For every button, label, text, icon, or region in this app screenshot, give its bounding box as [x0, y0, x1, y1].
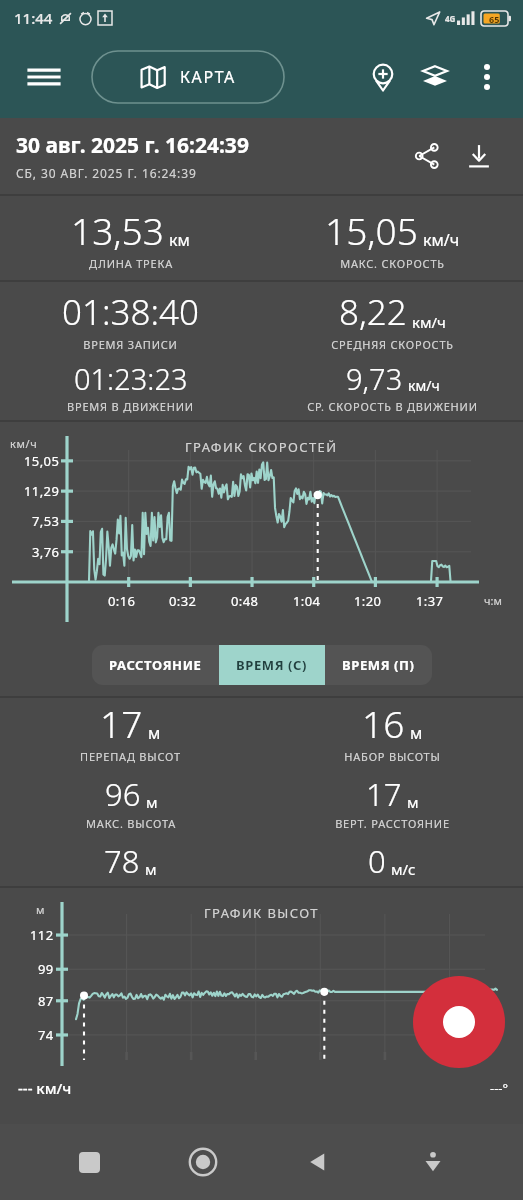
staticText: МАКС. СКОРОСТЬ	[340, 256, 445, 271]
button[interactable]: Layers	[409, 51, 461, 103]
button[interactable]: Recent apps	[61, 1134, 117, 1190]
staticText: км/ч	[408, 376, 440, 395]
staticText: м	[145, 859, 157, 879]
button[interactable]: Add marker	[357, 51, 409, 103]
button[interactable]: Hide navigation bar	[405, 1134, 461, 1190]
staticText: --- км/ч	[18, 1078, 72, 1098]
staticText: 8,22	[339, 288, 407, 336]
button[interactable]: Back	[290, 1134, 346, 1190]
staticText: ПЕРЕПАД ВЫСОТ	[80, 749, 181, 764]
staticText: СР. СКОРОСТЬ В ДВИЖЕНИИ	[307, 399, 478, 414]
staticText: 11,29	[24, 482, 60, 500]
button[interactable]: Download	[453, 130, 505, 182]
staticText: 0:48	[231, 592, 259, 610]
staticText: 0	[368, 840, 386, 882]
staticText: км	[169, 229, 190, 251]
staticText: 15,05	[325, 205, 418, 255]
staticText: м/с	[391, 859, 416, 879]
staticText: РАССТОЯНИЕ	[109, 656, 202, 674]
staticText: 17	[100, 698, 143, 748]
staticText: км/ч	[423, 229, 460, 251]
staticText: 96	[105, 773, 141, 815]
button[interactable]: More options	[461, 51, 513, 103]
staticText: 01:38:40	[62, 288, 199, 336]
staticText: 01:23:23	[74, 359, 188, 398]
staticText: 30 авг. 2025 г. 16:24:39	[16, 131, 249, 160]
staticText: ВРЕМЯ В ДВИЖЕНИИ	[67, 399, 194, 414]
staticText: МАКС. ВЫСОТА	[86, 816, 176, 831]
staticText: ---°	[490, 1079, 509, 1097]
staticText: ДЛИНА ТРЕКА	[89, 256, 173, 271]
staticText: м	[36, 902, 45, 917]
staticText: 1:37	[416, 592, 444, 610]
staticText: 99	[38, 960, 54, 978]
button[interactable]: РАССТОЯНИЕ	[92, 645, 219, 685]
staticText: км/ч	[412, 312, 446, 332]
button[interactable]: Home	[175, 1134, 231, 1190]
staticText: 1:20	[354, 592, 382, 610]
staticText: ВРЕМЯ ЗАПИСИ	[83, 337, 178, 352]
staticText: м	[407, 792, 419, 812]
staticText: 13,53	[71, 205, 164, 255]
staticText: 1:04	[293, 592, 321, 610]
staticText: 74	[38, 1026, 54, 1044]
staticText: ч:м	[484, 593, 502, 608]
button[interactable]: ВРЕМЯ (П)	[325, 645, 432, 685]
button[interactable]: Share	[401, 130, 453, 182]
staticText: 0:32	[169, 592, 197, 610]
staticText: ВРЕМЯ (П)	[342, 656, 415, 674]
staticText: СРЕДНЯЯ СКОРОСТЬ	[331, 337, 454, 352]
staticText: СБ, 30 АВГ. 2025 Г. 16:24:39	[16, 165, 197, 181]
button[interactable]: Menu	[22, 55, 66, 99]
staticText: ВЕРТ. РАССТОЯНИЕ	[335, 816, 450, 831]
staticText: 112	[30, 926, 54, 944]
staticText: м	[146, 792, 158, 812]
staticText: 65	[489, 13, 500, 25]
staticText: 16	[362, 698, 405, 748]
staticText: м	[410, 722, 423, 744]
staticText: 7,53	[32, 512, 60, 530]
staticText: КАРТА	[180, 66, 236, 88]
button[interactable]: КАРТА	[92, 51, 284, 103]
staticText: ВРЕМЯ (С)	[236, 656, 308, 674]
staticText: км/ч	[10, 436, 38, 451]
staticText: 15,05	[24, 452, 60, 470]
staticText: 11:44	[14, 8, 53, 28]
staticText: ГРАФИК СКОРОСТЕЙ	[185, 438, 338, 456]
staticText: 87	[38, 992, 54, 1010]
staticText: 9,73	[346, 359, 403, 398]
staticText: ГРАФИК ВЫСОТ	[204, 904, 319, 922]
staticText: НАБОР ВЫСОТЫ	[344, 749, 441, 764]
staticText: 4G	[445, 13, 456, 24]
staticText: 0:16	[108, 592, 136, 610]
button[interactable]: ВРЕМЯ (С)	[219, 645, 325, 685]
staticText: м	[148, 722, 161, 744]
button[interactable]: Record	[413, 976, 505, 1068]
staticText: 78	[104, 840, 140, 882]
staticText: 17	[366, 773, 402, 815]
staticText: 3,76	[32, 543, 60, 561]
